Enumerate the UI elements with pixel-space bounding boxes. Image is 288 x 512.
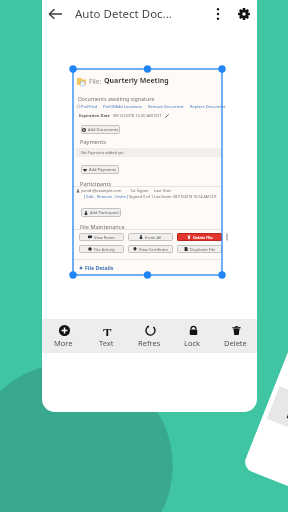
staticText: More: [54, 338, 73, 348]
staticText: File Maintenance: [80, 223, 125, 231]
staticText: Payments: [80, 138, 106, 146]
button[interactable]: Add Payments: [81, 165, 119, 174]
button[interactable]: Delete: [214, 320, 257, 352]
staticText: PreFilled: [81, 104, 98, 109]
staticText: Auto Detect Doc...: [75, 6, 172, 22]
staticText: jsmith@example.com: [81, 188, 122, 193]
button[interactable]: Add Participant: [81, 208, 121, 217]
staticText: Remove Document: [148, 104, 184, 109]
button[interactable]: View Room: [79, 233, 124, 241]
staticText: Replace Document: [190, 104, 226, 109]
staticText: File Activity: [94, 247, 115, 252]
button[interactable]: Refres: [128, 320, 171, 352]
button[interactable]: Back: [42, 1, 68, 27]
button[interactable]: Lock: [171, 320, 214, 352]
staticText: Refres: [138, 338, 161, 348]
staticText: Add Payments: [89, 167, 117, 172]
button[interactable]: Email: [226, 233, 228, 241]
staticText: Last Visit:: [154, 188, 172, 193]
staticText: T: [103, 324, 112, 336]
staticText: Last Invite: 08/15/2018 10:54 AM CDT: [154, 194, 217, 199]
staticText: Invite All: [145, 235, 162, 240]
staticText: Documents awaiting signature: [78, 95, 155, 102]
staticText: Signed 0 of 1: [129, 194, 154, 199]
staticText: Delete: [224, 338, 247, 348]
button[interactable]: More options: [208, 4, 228, 24]
button[interactable]: Settings: [234, 4, 254, 24]
button[interactable]: File Activity: [79, 245, 124, 253]
button[interactable]: T: [85, 320, 128, 352]
staticText: [ Edit - Remove - Invite ]: [84, 194, 129, 199]
staticText: Add Participant: [90, 210, 119, 215]
staticText: No Payment added yet.: [81, 150, 125, 155]
staticText: Ma: [284, 405, 288, 427]
staticText: Text: [99, 338, 114, 348]
button[interactable]: Add Documents: [81, 125, 120, 134]
button[interactable]: Delete File: [177, 233, 222, 241]
staticText: Add Documents: [88, 127, 119, 132]
staticText: Prefill/Add Locations: [103, 104, 142, 109]
staticText: Delete File: [193, 235, 213, 240]
button[interactable]: Duplicate File: [177, 245, 222, 253]
staticText: 1st Signer: [130, 188, 149, 193]
staticText: Participants: [80, 180, 112, 188]
staticText: File Details: [85, 264, 114, 271]
staticText: Expiration Date: [79, 113, 110, 118]
button[interactable]: Invite All: [128, 233, 173, 241]
button[interactable]: More: [42, 320, 85, 352]
staticText: Duplicate File: [190, 247, 216, 252]
staticText: Quarterly Meeting: [104, 76, 169, 86]
staticText: Lock: [184, 338, 201, 348]
staticText: 08/12/2018 12:00 AM CDT: [113, 113, 162, 118]
staticText: File:: [89, 77, 104, 86]
button[interactable]: View Certificate: [128, 245, 173, 253]
staticText: View Certificate: [139, 247, 168, 252]
staticText: View Room: [94, 235, 115, 240]
